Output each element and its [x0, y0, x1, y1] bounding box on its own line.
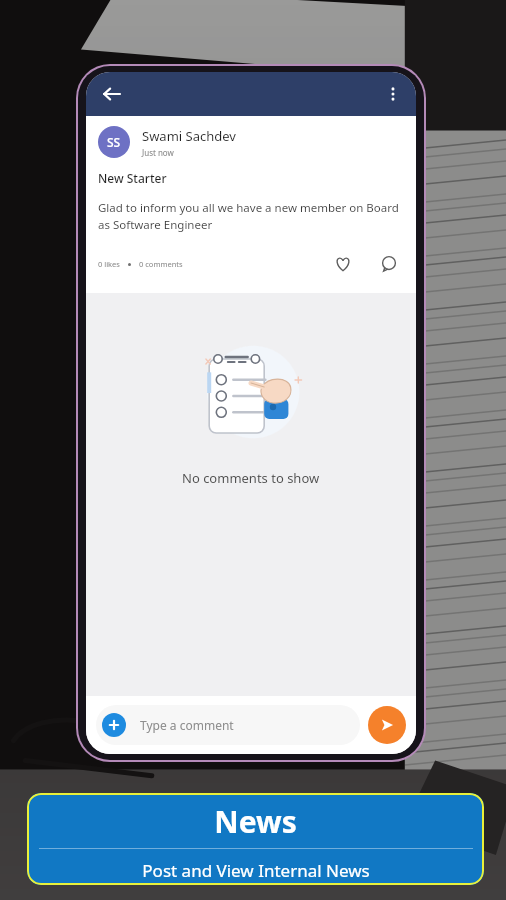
- staticText: Type a comment: [140, 717, 234, 733]
- button[interactable]: Back: [94, 77, 128, 111]
- button[interactable]: More options: [376, 77, 410, 111]
- staticText: Post and View Internal News: [142, 859, 370, 882]
- staticText: News: [214, 801, 297, 842]
- staticText: New Starter: [98, 170, 167, 186]
- staticText: No comments to show: [182, 469, 320, 487]
- button[interactable]: News: [27, 793, 484, 885]
- button[interactable]: Comment: [374, 249, 404, 279]
- staticText: 0 likes: [98, 259, 120, 269]
- button[interactable]: Add attachment: [96, 705, 360, 745]
- staticText: SS: [107, 134, 121, 150]
- staticText: Swami Sachdev: [142, 127, 236, 145]
- staticText: Just now: [142, 147, 174, 158]
- button[interactable]: Send: [368, 706, 406, 744]
- staticText: 0 comments: [139, 259, 183, 269]
- staticText: Glad to inform you all we have a new mem…: [98, 200, 404, 233]
- button[interactable]: Like: [328, 249, 358, 279]
- button[interactable]: Add attachment: [102, 713, 126, 737]
